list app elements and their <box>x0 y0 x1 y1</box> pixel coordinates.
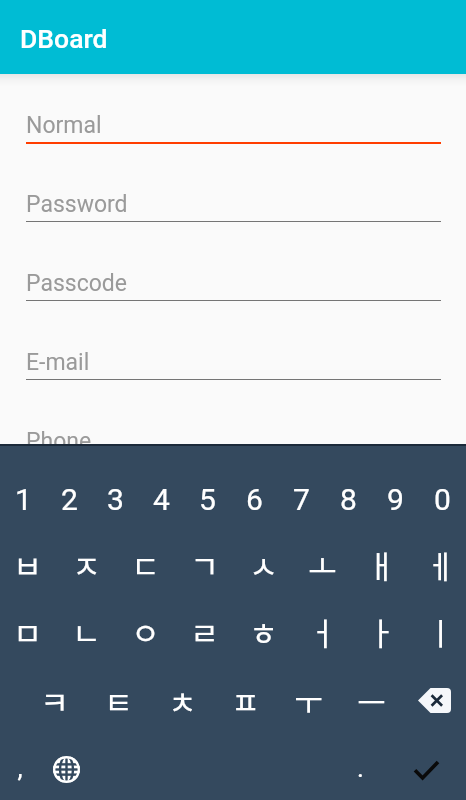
button[interactable]: ㅌ <box>86 667 150 734</box>
staticText: ㅈ <box>72 542 101 587</box>
button[interactable]: ㅋ <box>22 667 86 734</box>
staticText: , <box>17 753 23 783</box>
staticText: 7 <box>293 482 310 517</box>
staticText: ㅡ <box>357 678 386 723</box>
button[interactable]: 0 <box>419 466 466 533</box>
staticText: 1 <box>15 482 32 517</box>
staticText: 2 <box>61 482 78 517</box>
button[interactable]: ㅣ <box>411 598 466 665</box>
staticText: Phone <box>26 428 92 455</box>
button[interactable]: 9 <box>372 466 419 533</box>
staticText: Password <box>26 191 128 218</box>
button[interactable]: ㅜ <box>277 667 340 734</box>
staticText: ㅁ <box>13 609 42 654</box>
staticText: ㅊ <box>168 678 197 723</box>
staticText: ㅇ <box>131 609 160 654</box>
button[interactable]: Normal <box>0 74 466 153</box>
staticText: 5 <box>199 482 216 517</box>
staticText: E-mail <box>26 349 90 376</box>
button[interactable]: 3 <box>92 466 138 533</box>
button[interactable]: Enter <box>401 734 466 800</box>
staticText: ㅐ <box>367 542 396 587</box>
staticText: Normal <box>26 112 102 139</box>
button[interactable]: ㅊ <box>150 667 214 734</box>
staticText: ㅎ <box>249 609 278 654</box>
button[interactable]: ㅂ <box>0 531 57 598</box>
button[interactable]: ㅇ <box>116 598 175 665</box>
button[interactable]: ㅐ <box>352 531 411 598</box>
button[interactable]: DBoard <box>0 0 466 74</box>
button[interactable]: ㅍ <box>214 667 277 734</box>
button[interactable]: ㅓ <box>293 598 352 665</box>
staticText: ㅅ <box>249 542 278 587</box>
button[interactable]: ㅡ <box>340 667 403 734</box>
staticText: ㄹ <box>190 609 219 654</box>
staticText: ㅂ <box>13 542 42 587</box>
staticText: ㅋ <box>40 678 69 723</box>
button[interactable]: ㄹ <box>175 598 234 665</box>
button[interactable]: ㅈ <box>57 531 116 598</box>
button[interactable]: Password <box>0 153 466 232</box>
staticText: ㄱ <box>190 542 219 587</box>
button[interactable]: ㄷ <box>116 531 175 598</box>
button[interactable]: ㅁ <box>0 598 57 665</box>
staticText: ㅓ <box>308 609 337 654</box>
button[interactable]: Change language <box>40 734 92 800</box>
button[interactable]: 6 <box>231 466 278 533</box>
button[interactable]: 2 <box>46 466 92 533</box>
staticText: 4 <box>153 482 170 517</box>
staticText: 6 <box>246 482 263 517</box>
staticText: ㅌ <box>104 678 133 723</box>
button[interactable]: . <box>346 734 374 800</box>
button[interactable]: Passcode <box>0 232 466 311</box>
staticText: DBoard <box>20 23 108 54</box>
staticText: 9 <box>387 482 404 517</box>
staticText: ㄴ <box>72 609 101 654</box>
button[interactable]: 7 <box>278 466 325 533</box>
button[interactable]: E-mail <box>0 311 466 390</box>
staticText: ㅍ <box>231 678 260 723</box>
staticText: 0 <box>434 482 451 517</box>
button[interactable]: 4 <box>138 466 184 533</box>
button[interactable]: 1 <box>0 466 46 533</box>
button[interactable]: ㅎ <box>234 598 293 665</box>
button[interactable]: 5 <box>184 466 231 533</box>
button[interactable]: ㄱ <box>175 531 234 598</box>
staticText: ㅔ <box>426 542 455 587</box>
button[interactable]: ㄴ <box>57 598 116 665</box>
button[interactable]: ㅔ <box>411 531 466 598</box>
staticText: ㅜ <box>294 678 323 723</box>
button[interactable]: , <box>0 734 40 800</box>
staticText: Passcode <box>26 270 127 297</box>
staticText: ㅗ <box>308 542 337 587</box>
button[interactable]: Backspace <box>403 667 466 734</box>
button[interactable]: ㅅ <box>234 531 293 598</box>
button[interactable]: ㅗ <box>293 531 352 598</box>
staticText: 3 <box>107 482 124 517</box>
staticText: ㅏ <box>367 609 396 654</box>
button[interactable]: ㅏ <box>352 598 411 665</box>
button[interactable]: 8 <box>325 466 372 533</box>
staticText: ㅣ <box>426 609 455 654</box>
staticText: . <box>357 753 364 783</box>
staticText: 8 <box>340 482 357 517</box>
staticText: ㄷ <box>131 542 160 587</box>
